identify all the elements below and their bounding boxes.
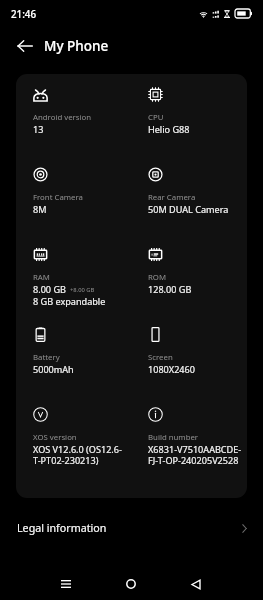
button[interactable]: Battery (16, 325, 131, 375)
button[interactable]: RAM (16, 245, 131, 307)
staticText: Front Camera (33, 192, 83, 203)
staticText: Battery (33, 352, 60, 363)
staticText: +8.00 GB (70, 286, 95, 294)
staticText: 8.00 GB (33, 283, 66, 295)
staticText: RAM (33, 272, 50, 283)
staticText: X6831-V7510AABCDE- FJ-T-OP-240205V2528 (148, 443, 242, 467)
staticText: 128.00 GB (148, 283, 192, 295)
button[interactable]: Recent apps (50, 569, 81, 599)
staticText: Screen (148, 352, 173, 363)
staticText: Rear Camera (148, 192, 196, 203)
staticText: 50M DUAL Camera (148, 203, 229, 215)
staticText: 1080X2460 (148, 363, 195, 375)
button[interactable]: CPU (131, 85, 247, 135)
staticText: XOS version (33, 432, 77, 443)
button[interactable]: Front Camera (16, 165, 131, 215)
staticText: 8 GB expandable (33, 295, 106, 307)
button[interactable]: Screen (131, 325, 247, 375)
button[interactable]: Legal information (0, 511, 263, 545)
staticText: Helio G88 (148, 123, 190, 135)
button[interactable]: Back (11, 32, 39, 60)
staticText: 21:46 (11, 8, 37, 21)
staticText: 5000mAh (33, 363, 74, 375)
staticText: Android version (33, 112, 92, 123)
button[interactable]: Rear Camera (131, 165, 247, 215)
button[interactable]: Android version (16, 85, 131, 135)
staticText: XOS V12.6.0 (OS12.6- T-PT02-230213) (33, 443, 122, 467)
staticText: 8M (33, 203, 47, 215)
button[interactable]: Back (180, 569, 211, 599)
staticText: Build number (148, 432, 199, 443)
staticText: Legal information (17, 521, 107, 536)
button[interactable]: XOS version (16, 405, 131, 467)
button[interactable]: Home (115, 569, 146, 599)
staticText: ROM (148, 272, 167, 283)
button[interactable]: ROM (131, 245, 247, 295)
staticText: 13 (33, 123, 44, 135)
staticText: My Phone (44, 37, 109, 55)
staticText: CPU (148, 112, 164, 123)
button[interactable]: Build number (131, 405, 247, 467)
